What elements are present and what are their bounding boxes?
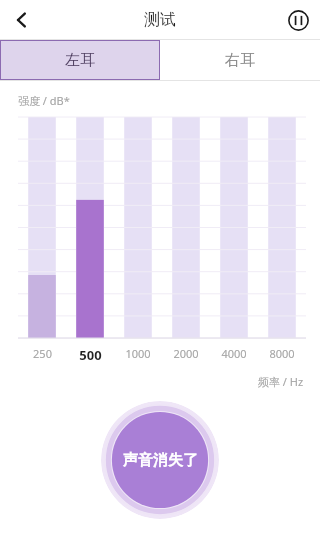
staticText: 250	[33, 346, 52, 361]
staticText: 右耳	[225, 51, 255, 70]
staticText: 1000	[125, 346, 151, 361]
button[interactable]: 左耳	[0, 40, 160, 80]
button[interactable]: Back	[0, 0, 44, 40]
staticText: 声音消失了	[123, 451, 198, 470]
staticText: 频率 / Hz	[258, 374, 304, 389]
button[interactable]: 声音消失了	[101, 401, 219, 519]
staticText: 8000	[269, 346, 295, 361]
staticText: 2000	[173, 346, 199, 361]
staticText: 强度 / dB*	[18, 93, 70, 108]
button[interactable]: Pause	[276, 0, 320, 40]
staticText: 500	[79, 346, 102, 364]
staticText: 左耳	[65, 51, 95, 70]
button[interactable]: 右耳	[160, 40, 320, 80]
staticText: 测试	[144, 10, 176, 30]
staticText: 4000	[221, 346, 247, 361]
